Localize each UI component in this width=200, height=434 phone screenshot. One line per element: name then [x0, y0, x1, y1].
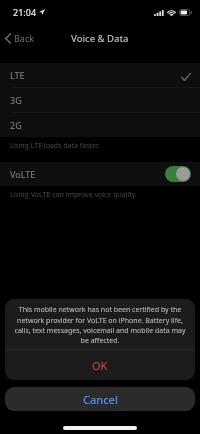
staticText: Using LTE loads data faster.	[10, 141, 200, 151]
staticText: VoLTE	[10, 168, 36, 180]
staticText: Back	[14, 32, 35, 44]
button[interactable]: 2G	[0, 113, 200, 137]
button[interactable]: Cancel	[5, 387, 195, 411]
staticText: OK	[92, 358, 108, 373]
button[interactable]: OK	[5, 350, 195, 380]
staticText: Voice & Data	[71, 32, 129, 45]
staticText: LTE	[10, 69, 25, 81]
button[interactable]: Back	[2, 28, 38, 48]
staticText: This mobile network has not been certifi…	[14, 305, 186, 345]
other: Selected	[181, 73, 191, 81]
staticText: Cancel	[83, 392, 118, 407]
button[interactable]: 3G	[0, 88, 200, 112]
button[interactable]: VoLTE	[0, 162, 200, 186]
staticText: 3G	[10, 94, 22, 106]
staticText: 21:04	[13, 6, 37, 18]
button[interactable]: LTE	[0, 63, 200, 87]
staticText: Using VoLTE can improve voice quality.	[10, 190, 200, 200]
button[interactable]: VoLTE toggle	[165, 166, 191, 182]
staticText: 2G	[10, 119, 22, 131]
